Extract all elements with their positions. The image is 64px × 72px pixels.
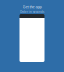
staticText: Get the app: [22, 4, 41, 9]
staticText: Order in seconds: [20, 10, 44, 14]
